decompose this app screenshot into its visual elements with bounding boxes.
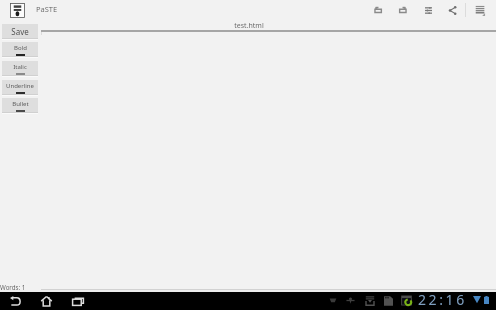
staticText: test.html — [1, 21, 496, 31]
button[interactable]: More options — [471, 0, 491, 20]
button[interactable]: Recent apps — [65, 292, 90, 310]
staticText: Save — [11, 26, 29, 37]
staticText: Bold — [14, 44, 27, 52]
button[interactable]: Undo — [368, 0, 388, 20]
staticText: Italic — [13, 63, 27, 71]
button[interactable]: Save — [2, 24, 38, 40]
button[interactable]: Bold — [2, 42, 38, 58]
button[interactable]: Formatting options — [418, 0, 438, 20]
staticText: Words: 1 — [0, 283, 26, 291]
button[interactable]: Back — [3, 292, 28, 310]
staticText: Bullet — [12, 100, 29, 108]
staticText: PaSTE — [36, 4, 58, 14]
button[interactable]: Home — [34, 292, 59, 310]
staticText: Underline — [6, 82, 34, 90]
staticText: 22:16 — [418, 290, 467, 308]
button[interactable]: Bullet — [2, 98, 38, 114]
button[interactable]: Italic — [2, 61, 38, 77]
button[interactable]: Share — [442, 0, 462, 20]
button[interactable]: PaSTE app — [8, 1, 27, 20]
button[interactable]: Underline — [2, 80, 38, 96]
button[interactable]: Redo — [393, 0, 413, 20]
